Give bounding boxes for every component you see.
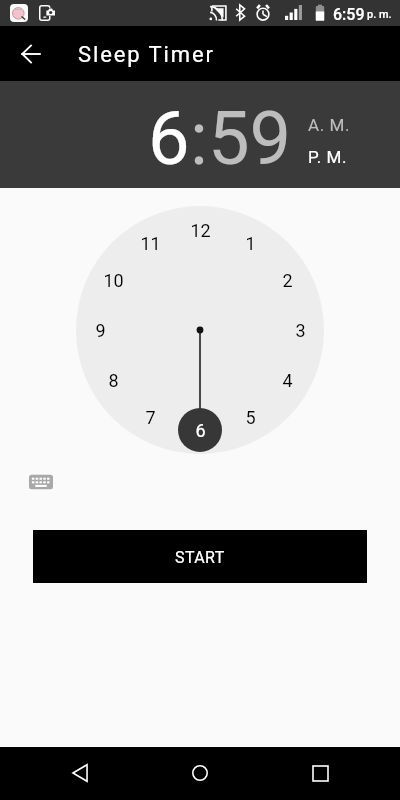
button[interactable]: 59 (208, 95, 292, 182)
button[interactable]: Back (54, 752, 106, 794)
staticText: 5 (245, 407, 256, 428)
staticText: 9 (95, 320, 106, 341)
staticText: Sleep Timer (78, 42, 215, 68)
button[interactable]: 6 (148, 95, 190, 182)
button[interactable]: 9 (80, 314, 120, 346)
staticText: 8 (108, 370, 119, 391)
button[interactable]: 10 (93, 264, 133, 296)
staticText: 1 (245, 233, 256, 254)
button[interactable]: 5 (230, 401, 270, 433)
button[interactable]: 3 (280, 314, 320, 346)
staticText: 12 (190, 220, 211, 241)
staticText: 4 (282, 370, 293, 391)
staticText: p. m. (367, 8, 392, 21)
staticText: : (190, 95, 208, 182)
button[interactable]: Home (174, 752, 226, 794)
button[interactable]: 12 (180, 214, 220, 246)
staticText: 2 (282, 270, 293, 291)
button[interactable]: 11 (130, 227, 170, 259)
staticText: 7 (145, 407, 156, 428)
button[interactable]: 4 (267, 364, 307, 396)
staticText: 3 (295, 320, 306, 341)
staticText: 10 (103, 270, 124, 291)
staticText: 6 (195, 420, 206, 441)
button[interactable]: Recent apps (294, 752, 346, 794)
button[interactable]: 2 (267, 264, 307, 296)
staticText: START (175, 548, 225, 567)
button[interactable]: 8 (93, 364, 133, 396)
staticText: 6:59 (333, 5, 365, 24)
button[interactable]: P. M. (308, 147, 348, 167)
button[interactable]: START (33, 530, 367, 583)
button[interactable]: 6 (180, 414, 220, 446)
button[interactable]: 1 (230, 227, 270, 259)
button[interactable]: Switch to keyboard input (29, 473, 53, 491)
button[interactable]: 7 (130, 401, 170, 433)
button[interactable]: Navigate up (11, 34, 51, 74)
button[interactable]: A. M. (308, 115, 351, 135)
staticText: 11 (140, 233, 161, 254)
